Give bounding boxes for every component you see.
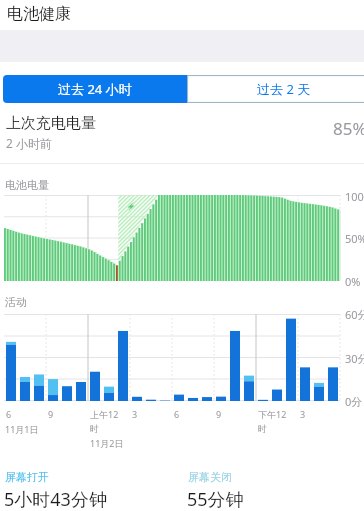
- staticText: 3: [132, 408, 138, 420]
- staticText: 下午12: [258, 408, 287, 420]
- staticText: 30分: [345, 351, 364, 366]
- staticText: 85%: [333, 117, 364, 140]
- staticText: 3: [300, 408, 306, 420]
- staticText: 6: [174, 408, 180, 420]
- staticText: 电池健康: [7, 4, 71, 24]
- staticText: 9: [48, 408, 54, 420]
- staticText: 2 小时前: [6, 135, 52, 151]
- staticText: 0%: [345, 274, 361, 289]
- staticText: 6: [6, 408, 12, 420]
- staticText: 55分钟: [187, 487, 244, 511]
- button[interactable]: 过去 24 小时: [3, 75, 187, 103]
- staticText: 11月1日: [5, 423, 39, 435]
- staticText: 电池电量: [5, 178, 49, 192]
- staticText: 上次充电电量: [6, 114, 96, 133]
- staticText: 屏幕关闭: [188, 470, 232, 484]
- staticText: 11月2日: [90, 437, 124, 449]
- staticText: 过去 24 小时: [58, 80, 132, 98]
- staticText: 屏幕打开: [5, 470, 49, 484]
- staticText: 过去 2 天: [257, 80, 311, 98]
- staticText: 时: [90, 423, 99, 434]
- staticText: 上午12: [90, 408, 119, 420]
- staticText: 时: [258, 423, 267, 434]
- staticText: 100%: [345, 189, 364, 204]
- staticText: 9: [216, 408, 222, 420]
- staticText: 0分: [345, 394, 363, 409]
- staticText: 活动: [5, 295, 27, 309]
- button[interactable]: 过去 2 天: [187, 75, 364, 103]
- staticText: 5小时43分钟: [4, 487, 107, 511]
- staticText: 60分: [345, 307, 364, 322]
- staticText: 50%: [345, 231, 364, 246]
